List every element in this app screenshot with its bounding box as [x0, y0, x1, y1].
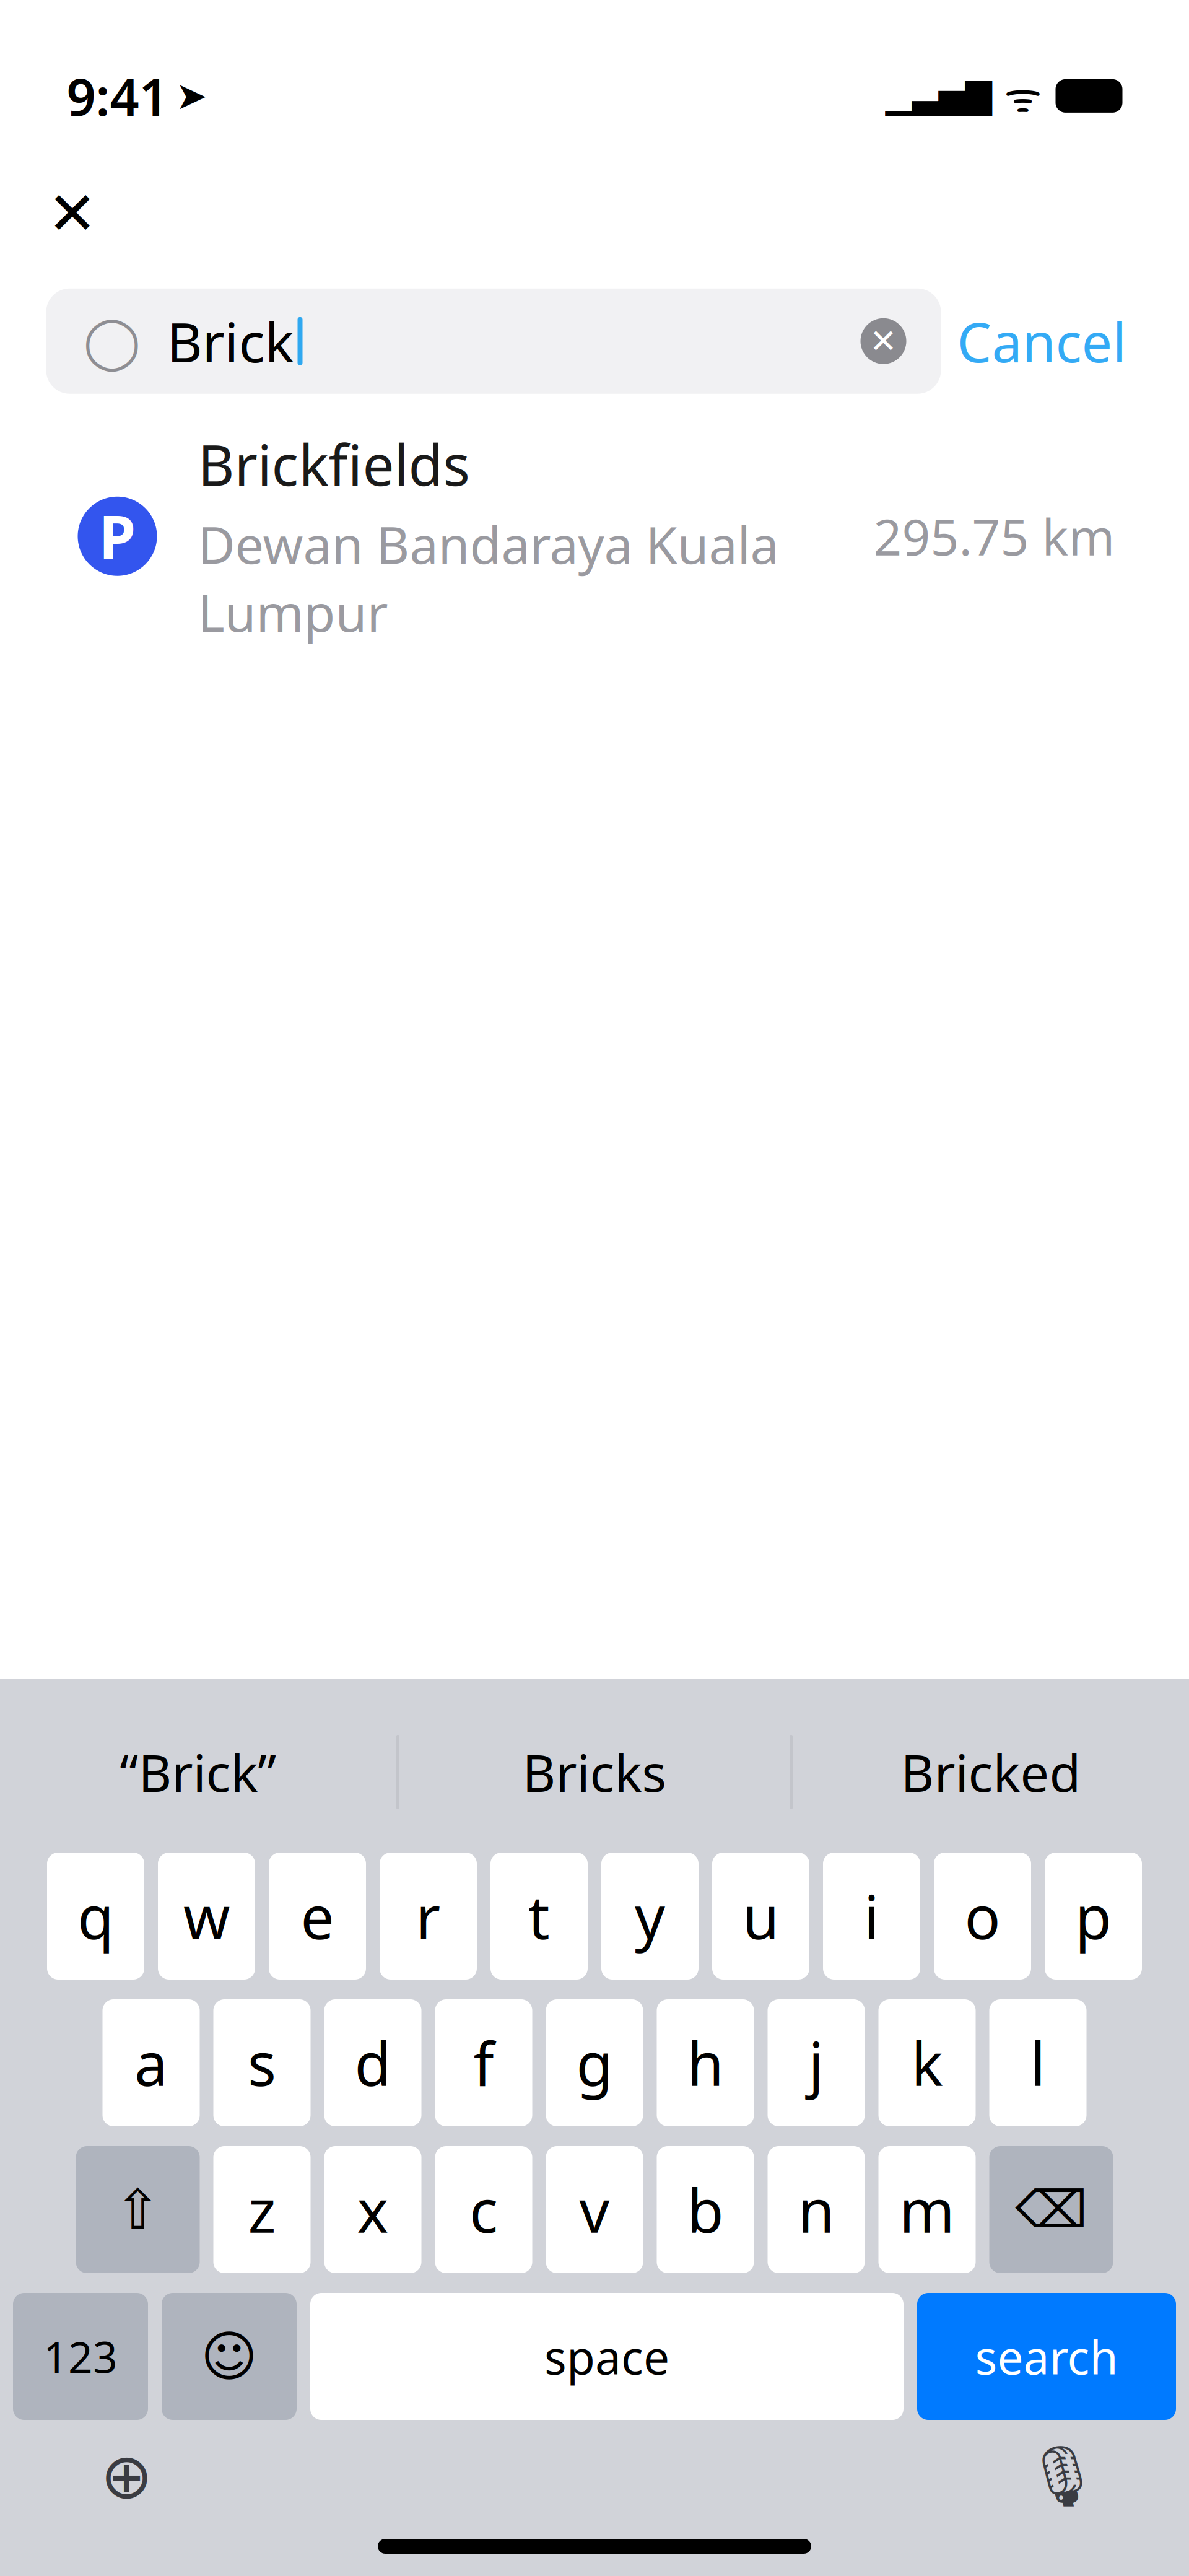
button[interactable]: Clear text	[860, 318, 906, 364]
staticText: ☺	[201, 2326, 258, 2387]
button[interactable]: j	[768, 1999, 865, 2126]
staticText: Bricked	[901, 1738, 1081, 1806]
staticText: g	[576, 2023, 613, 2102]
staticText: 295.75 km	[873, 503, 1115, 569]
staticText: o	[965, 1877, 1000, 1956]
button[interactable]: Change keyboard	[86, 2436, 167, 2517]
staticText: h	[687, 2023, 724, 2102]
button[interactable]: q	[47, 1853, 144, 1980]
staticText: ⌫	[1015, 2181, 1087, 2239]
button[interactable]: P	[0, 456, 1189, 617]
staticText: d	[355, 2023, 391, 2102]
button[interactable]: f	[435, 1999, 532, 2126]
staticText: j	[808, 2023, 824, 2102]
button[interactable]: v	[546, 2146, 643, 2273]
staticText: a	[134, 2023, 168, 2102]
staticText: ✕	[47, 180, 97, 247]
button[interactable]: u	[712, 1853, 809, 1980]
button[interactable]: h	[657, 1999, 754, 2126]
button[interactable]: 123	[13, 2293, 148, 2420]
staticText: b	[687, 2170, 724, 2249]
staticText: 🎙	[1025, 2442, 1100, 2510]
staticText: s	[248, 2023, 276, 2102]
button[interactable]: r	[380, 1853, 477, 1980]
button[interactable]: g	[546, 1999, 643, 2126]
staticText: Bricks	[522, 1738, 667, 1806]
staticText: space	[544, 2326, 669, 2387]
button[interactable]: Bricks	[399, 1716, 790, 1828]
staticText: k	[911, 2023, 943, 2102]
staticText: t	[528, 1877, 550, 1956]
staticText: P	[99, 497, 136, 576]
button[interactable]: Dictate	[1022, 2436, 1103, 2517]
button[interactable]: ⌫	[989, 2146, 1113, 2273]
staticText: m	[899, 2170, 955, 2249]
staticText: w	[183, 1877, 230, 1956]
staticText: ▁▃▅▇	[885, 76, 992, 116]
staticText: ➤	[176, 74, 207, 117]
staticText: i	[864, 1877, 879, 1956]
staticText: n	[798, 2170, 834, 2249]
staticText: 9:41	[67, 62, 168, 130]
button[interactable]: k	[878, 1999, 976, 2126]
button[interactable]: w	[158, 1853, 255, 1980]
staticText: ⊕	[100, 2441, 153, 2512]
staticText: p	[1075, 1877, 1112, 1956]
button[interactable]: Close	[38, 179, 106, 248]
staticText: v	[579, 2170, 610, 2249]
button[interactable]: a	[102, 1999, 200, 2126]
button[interactable]: p	[1045, 1853, 1142, 1980]
button[interactable]: b	[657, 2146, 754, 2273]
staticText: “Brick”	[120, 1738, 277, 1806]
staticText: ◯	[83, 312, 141, 370]
staticText: r	[416, 1877, 441, 1956]
staticText: l	[1030, 2023, 1046, 2102]
staticText: ᯤ	[1004, 69, 1042, 123]
staticText: u	[743, 1877, 779, 1956]
button[interactable]: y	[601, 1853, 699, 1980]
staticText: ⇧	[115, 2179, 161, 2241]
staticText: Brick	[167, 305, 294, 377]
staticText: ✕	[869, 322, 897, 360]
staticText: x	[357, 2170, 389, 2249]
button[interactable]: n	[768, 2146, 865, 2273]
button[interactable]: x	[324, 2146, 421, 2273]
button[interactable]: “Brick”	[0, 1716, 396, 1828]
button[interactable]: c	[435, 2146, 532, 2273]
staticText: Cancel	[957, 305, 1127, 377]
staticText: Brickfields	[198, 427, 470, 501]
button[interactable]: m	[878, 2146, 976, 2273]
button[interactable]: Cancel	[941, 289, 1143, 394]
button[interactable]: Bricked	[793, 1716, 1189, 1828]
staticText: Dewan Bandaraya Kuala Lumpur	[198, 510, 779, 646]
button[interactable]: s	[213, 1999, 311, 2126]
button[interactable]: l	[989, 1999, 1087, 2126]
staticText: y	[635, 1877, 665, 1956]
staticText: f	[473, 2023, 494, 2102]
staticText: search	[975, 2326, 1118, 2387]
button[interactable]: o	[934, 1853, 1031, 1980]
button[interactable]: t	[490, 1853, 588, 1980]
button[interactable]: z	[213, 2146, 311, 2273]
staticText: 123	[43, 2328, 118, 2385]
button[interactable]: ☺	[162, 2293, 297, 2420]
staticText: z	[248, 2170, 276, 2249]
staticText: c	[469, 2170, 498, 2249]
button[interactable]: d	[324, 1999, 421, 2126]
staticText: q	[77, 1877, 114, 1956]
button[interactable]: search	[917, 2293, 1176, 2420]
button[interactable]: i	[823, 1853, 920, 1980]
button[interactable]: e	[269, 1853, 366, 1980]
button[interactable]: space	[310, 2293, 904, 2420]
button[interactable]: ⇧	[76, 2146, 200, 2273]
staticText: e	[301, 1877, 334, 1956]
